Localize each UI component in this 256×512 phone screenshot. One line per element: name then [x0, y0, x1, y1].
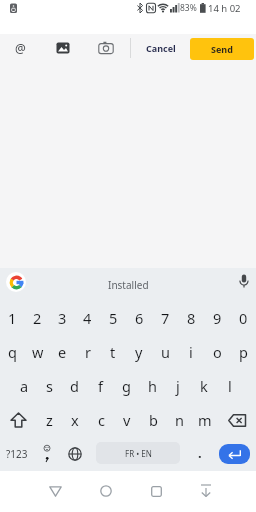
- staticText: e: [58, 342, 67, 362]
- button[interactable]: [218, 403, 256, 437]
- staticText: @: [15, 40, 26, 56]
- staticText: c: [98, 410, 105, 430]
- staticText: k: [200, 376, 208, 396]
- staticText: i: [189, 342, 193, 362]
- staticText: n: [175, 410, 184, 430]
- button[interactable]: p: [230, 335, 256, 369]
- staticText: x: [71, 410, 79, 430]
- button[interactable]: k: [191, 369, 217, 403]
- button[interactable]: [141, 476, 171, 506]
- staticText: 1: [8, 308, 17, 328]
- button[interactable]: r: [75, 335, 100, 369]
- button[interactable]: z: [37, 403, 62, 437]
- button[interactable]: [234, 272, 254, 292]
- button[interactable]: n: [166, 403, 192, 437]
- button[interactable]: 6: [126, 301, 152, 335]
- button[interactable]: w: [25, 335, 50, 369]
- staticText: 5: [109, 308, 118, 328]
- button[interactable]: f: [87, 369, 113, 403]
- button[interactable]: [6, 272, 26, 292]
- button[interactable]: [93, 35, 119, 61]
- button[interactable]: ?123: [2, 437, 32, 471]
- staticText: a: [20, 376, 29, 396]
- staticText: 4: [83, 308, 92, 328]
- button[interactable]: a: [12, 369, 37, 403]
- staticText: .: [198, 444, 202, 462]
- staticText: Cancel: [146, 42, 176, 54]
- staticText: m: [198, 410, 212, 430]
- staticText: q: [8, 342, 17, 362]
- button[interactable]: 9: [204, 301, 230, 335]
- button[interactable]: Send: [190, 38, 254, 60]
- button[interactable]: 5: [100, 301, 126, 335]
- button[interactable]: 1: [0, 301, 25, 335]
- staticText: s: [46, 376, 53, 396]
- staticText: 6: [135, 308, 144, 328]
- staticText: 7: [161, 308, 170, 328]
- staticText: Send: [211, 43, 233, 55]
- staticText: 83%: [180, 2, 197, 14]
- button[interactable]: [0, 403, 37, 437]
- button[interactable]: [50, 35, 76, 61]
- button[interactable]: o: [204, 335, 230, 369]
- button[interactable]: 2: [25, 301, 50, 335]
- button[interactable]: h: [139, 369, 165, 403]
- button[interactable]: d: [62, 369, 87, 403]
- staticText: h: [148, 376, 157, 396]
- button[interactable]: i: [178, 335, 204, 369]
- staticText: g: [122, 376, 131, 396]
- staticText: w: [32, 342, 44, 362]
- button[interactable]: [91, 476, 121, 506]
- button[interactable]: t: [100, 335, 126, 369]
- button[interactable]: 7: [152, 301, 178, 335]
- button[interactable]: g: [113, 369, 139, 403]
- button[interactable]: s: [37, 369, 62, 403]
- button[interactable]: e: [50, 335, 75, 369]
- button[interactable]: j: [165, 369, 191, 403]
- button[interactable]: [191, 476, 221, 506]
- button[interactable]: y: [126, 335, 152, 369]
- staticText: ?123: [6, 447, 28, 461]
- button[interactable]: 0: [230, 301, 256, 335]
- staticText: b: [149, 410, 158, 430]
- staticText: u: [161, 342, 170, 362]
- staticText: z: [46, 410, 53, 430]
- staticText: 14 h 02: [208, 2, 241, 15]
- staticText: y: [135, 342, 143, 362]
- staticText: r: [85, 342, 91, 362]
- button[interactable]: [62, 437, 87, 471]
- button[interactable]: m: [192, 403, 218, 437]
- staticText: l: [228, 376, 232, 396]
- staticText: 9: [213, 308, 222, 328]
- staticText: f: [98, 376, 103, 396]
- staticText: 0: [239, 308, 248, 328]
- button[interactable]: 3: [50, 301, 75, 335]
- button[interactable]: [36, 437, 58, 471]
- button[interactable]: l: [217, 369, 243, 403]
- staticText: 8: [187, 308, 196, 328]
- staticText: p: [239, 342, 248, 362]
- staticText: FR • EN: [125, 448, 152, 459]
- staticText: j: [176, 376, 180, 396]
- staticText: 3: [58, 308, 67, 328]
- staticText: t: [110, 342, 116, 362]
- button[interactable]: c: [88, 403, 114, 437]
- button[interactable]: v: [114, 403, 140, 437]
- button[interactable]: [40, 476, 70, 506]
- staticText: 2: [33, 308, 42, 328]
- button[interactable]: 4: [75, 301, 100, 335]
- button[interactable]: b: [140, 403, 166, 437]
- button[interactable]: 8: [178, 301, 204, 335]
- button[interactable]: @: [8, 35, 33, 61]
- button[interactable]: Cancel: [136, 34, 186, 62]
- staticText: Installed: [108, 278, 149, 292]
- staticText: d: [70, 376, 79, 396]
- button[interactable]: [219, 444, 250, 464]
- button[interactable]: .: [190, 437, 210, 469]
- button[interactable]: x: [62, 403, 88, 437]
- button[interactable]: FR • EN: [96, 442, 180, 464]
- button[interactable]: u: [152, 335, 178, 369]
- staticText: o: [213, 342, 222, 362]
- staticText: v: [123, 410, 131, 430]
- button[interactable]: q: [0, 335, 25, 369]
